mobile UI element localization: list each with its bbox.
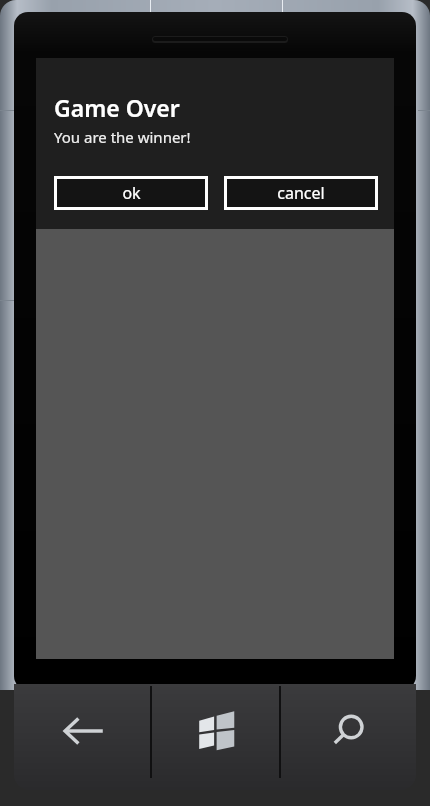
- button[interactable]: Search: [281, 686, 415, 786]
- staticText: ok: [122, 182, 141, 204]
- button[interactable]: cancel: [224, 176, 378, 210]
- button[interactable]: Back: [16, 686, 150, 786]
- button[interactable]: ok: [54, 176, 208, 210]
- staticText: Game Over: [54, 92, 180, 123]
- button[interactable]: Start: [152, 686, 279, 786]
- staticText: You are the winner!: [54, 127, 191, 147]
- staticText: cancel: [277, 182, 325, 204]
